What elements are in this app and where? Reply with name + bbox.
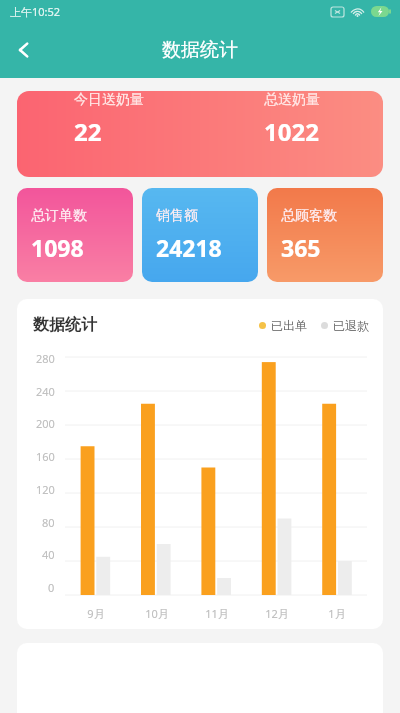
- staticText: 24218: [156, 232, 222, 263]
- staticText: 数据统计: [162, 38, 238, 62]
- button[interactable]: 今日送奶量: [17, 91, 383, 177]
- staticText: 160: [36, 449, 55, 464]
- staticText: 总订单数: [31, 207, 87, 225]
- staticText: 12月: [265, 606, 289, 621]
- staticText: 22: [74, 115, 102, 148]
- staticText: 280: [36, 351, 55, 366]
- staticText: 数据统计: [33, 315, 97, 335]
- staticText: 已出单: [271, 318, 307, 333]
- staticText: 11月: [205, 606, 229, 621]
- staticText: 9月: [87, 606, 105, 621]
- staticText: 1022: [264, 115, 319, 148]
- button[interactable]: 总订单数: [17, 188, 133, 282]
- staticText: 240: [36, 384, 55, 399]
- staticText: 10月: [145, 606, 169, 621]
- staticText: 销售额: [156, 207, 198, 225]
- staticText: 365: [281, 232, 321, 263]
- staticText: 已退款: [333, 318, 369, 333]
- staticText: 总顾客数: [281, 207, 337, 225]
- button[interactable]: 销售额: [142, 188, 258, 282]
- button[interactable]: Back: [0, 26, 48, 74]
- staticText: 40: [42, 547, 55, 562]
- staticText: 120: [36, 482, 55, 497]
- staticText: 上午10:52: [10, 4, 61, 19]
- staticText: 200: [36, 416, 55, 431]
- staticText: 0: [48, 580, 55, 595]
- button[interactable]: 总顾客数: [267, 188, 383, 282]
- staticText: 总送奶量: [264, 91, 320, 109]
- staticText: 今日送奶量: [74, 91, 144, 109]
- staticText: 1098: [31, 232, 84, 263]
- staticText: 1月: [328, 606, 346, 621]
- staticText: 80: [42, 515, 55, 530]
